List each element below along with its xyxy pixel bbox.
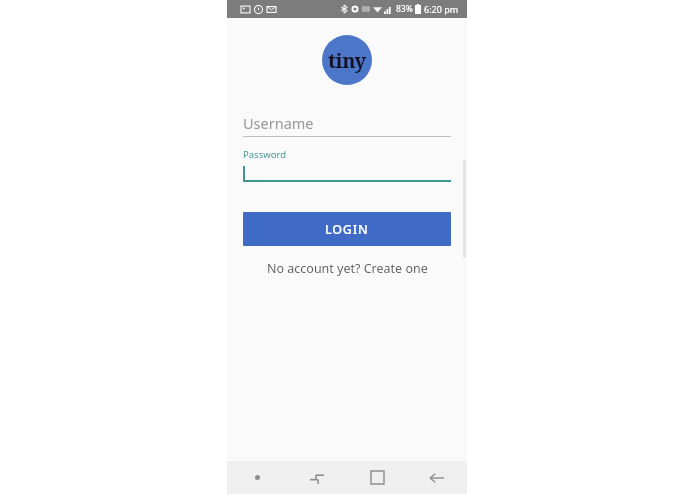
button[interactable]: No account yet? Create one bbox=[227, 260, 467, 277]
staticText: 83% bbox=[396, 3, 413, 15]
button[interactable]: Back bbox=[407, 461, 467, 494]
button[interactable]: Username bbox=[243, 112, 451, 137]
button[interactable]: Switch apps bbox=[287, 461, 347, 494]
button[interactable]: LOGIN bbox=[243, 212, 451, 246]
staticText: tiny bbox=[328, 47, 366, 74]
button[interactable]: Menu bbox=[227, 461, 287, 494]
button[interactable]: Password bbox=[243, 148, 451, 182]
staticText: 6:20 pm bbox=[424, 3, 459, 15]
staticText: Password bbox=[243, 148, 286, 161]
button[interactable]: Recent apps bbox=[347, 461, 407, 494]
staticText: No account yet? Create one bbox=[267, 260, 428, 277]
button[interactable]: tiny bbox=[322, 35, 372, 85]
staticText: Username bbox=[243, 113, 314, 133]
staticText: LOGIN bbox=[325, 221, 369, 238]
